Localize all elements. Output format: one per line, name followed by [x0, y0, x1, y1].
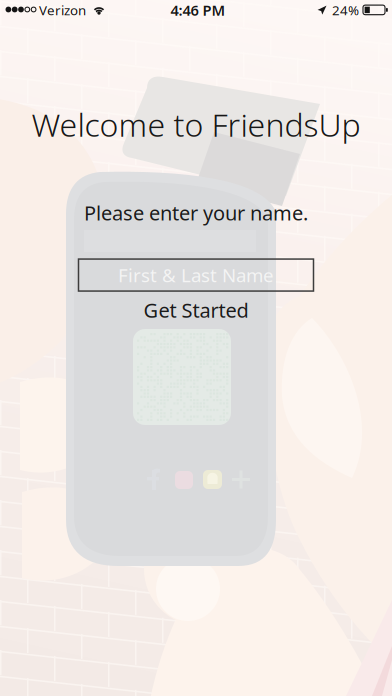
- staticText: First & Last Name: [118, 263, 274, 287]
- staticText: Verizon: [39, 1, 86, 19]
- staticText: 4:46 PM: [170, 0, 225, 20]
- staticText: Welcome to FriendsUp: [31, 103, 360, 145]
- button[interactable]: First & Last Name: [78, 259, 313, 291]
- staticText: Get Started: [143, 297, 248, 323]
- staticText: 24%: [332, 1, 359, 19]
- button[interactable]: Get Started: [116, 297, 276, 323]
- staticText: Please enter your name.: [84, 199, 308, 226]
